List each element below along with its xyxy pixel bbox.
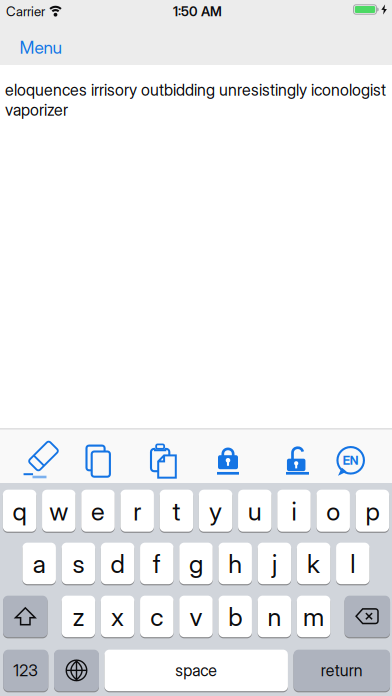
button[interactable]: v bbox=[179, 595, 213, 638]
button[interactable] bbox=[217, 446, 239, 476]
staticText: v bbox=[189, 602, 202, 632]
button[interactable]: k bbox=[297, 542, 330, 585]
staticText: n bbox=[267, 602, 281, 632]
button[interactable]: q bbox=[3, 489, 36, 533]
staticText: vaporizer bbox=[5, 101, 68, 119]
staticText: p bbox=[365, 496, 379, 526]
staticText: eloquences irrisory outbidding unresisti… bbox=[5, 81, 386, 99]
staticText: b bbox=[228, 602, 242, 632]
button[interactable]: m bbox=[297, 595, 330, 638]
button[interactable] bbox=[54, 649, 99, 692]
button[interactable]: space bbox=[104, 649, 288, 692]
staticText: a bbox=[33, 549, 46, 579]
staticText: EN bbox=[343, 453, 359, 467]
button[interactable]: b bbox=[218, 595, 252, 638]
button[interactable]: j bbox=[258, 542, 291, 585]
button[interactable]: g bbox=[179, 542, 213, 585]
staticText: f bbox=[153, 549, 161, 579]
button[interactable]: return bbox=[294, 649, 390, 692]
staticText: 123 bbox=[13, 661, 38, 680]
staticText: o bbox=[326, 496, 340, 526]
button[interactable]: e bbox=[81, 489, 115, 533]
button[interactable] bbox=[3, 595, 48, 638]
staticText: c bbox=[150, 602, 163, 632]
staticText: s bbox=[72, 549, 84, 579]
button[interactable] bbox=[286, 446, 309, 476]
button[interactable] bbox=[83, 443, 113, 479]
staticText: x bbox=[111, 602, 124, 632]
button[interactable]: d bbox=[101, 542, 134, 585]
button[interactable]: x bbox=[101, 595, 134, 638]
button[interactable]: i bbox=[277, 489, 311, 533]
staticText: h bbox=[228, 549, 242, 579]
button[interactable] bbox=[21, 439, 61, 479]
staticText: return bbox=[321, 661, 363, 680]
button[interactable]: EN bbox=[336, 447, 365, 476]
button[interactable]: t bbox=[160, 489, 193, 533]
button[interactable]: w bbox=[42, 489, 76, 533]
button[interactable]: h bbox=[218, 542, 252, 585]
staticText: Carrier bbox=[6, 3, 45, 19]
staticText: 1:50 AM bbox=[173, 3, 222, 19]
staticText: t bbox=[172, 496, 180, 526]
button[interactable] bbox=[345, 595, 390, 638]
staticText: y bbox=[209, 496, 222, 526]
staticText: w bbox=[49, 496, 68, 526]
staticText: space bbox=[175, 661, 217, 680]
button[interactable]: n bbox=[258, 595, 291, 638]
button[interactable]: l bbox=[336, 542, 370, 585]
button[interactable]: 123 bbox=[3, 649, 48, 692]
staticText: j bbox=[272, 549, 277, 579]
button[interactable]: z bbox=[62, 595, 95, 638]
button[interactable]: s bbox=[62, 542, 95, 585]
button[interactable]: c bbox=[140, 595, 174, 638]
staticText: Menu bbox=[19, 37, 61, 58]
button[interactable]: y bbox=[199, 489, 232, 533]
button[interactable]: a bbox=[22, 542, 56, 585]
staticText: z bbox=[72, 602, 84, 632]
button[interactable]: Menu bbox=[15, 31, 65, 64]
button[interactable]: o bbox=[316, 489, 350, 533]
staticText: k bbox=[307, 549, 320, 579]
staticText: u bbox=[248, 496, 262, 526]
staticText: d bbox=[111, 549, 125, 579]
staticText: r bbox=[133, 496, 141, 526]
staticText: m bbox=[303, 602, 324, 632]
button[interactable]: p bbox=[356, 489, 389, 533]
staticText: q bbox=[13, 496, 27, 526]
staticText: e bbox=[91, 496, 105, 526]
button[interactable]: r bbox=[120, 489, 154, 533]
button[interactable]: f bbox=[140, 542, 174, 585]
staticText: g bbox=[189, 549, 203, 579]
staticText: l bbox=[350, 549, 355, 579]
button[interactable]: u bbox=[238, 489, 272, 533]
staticText: i bbox=[291, 496, 296, 526]
button[interactable] bbox=[143, 441, 183, 481]
